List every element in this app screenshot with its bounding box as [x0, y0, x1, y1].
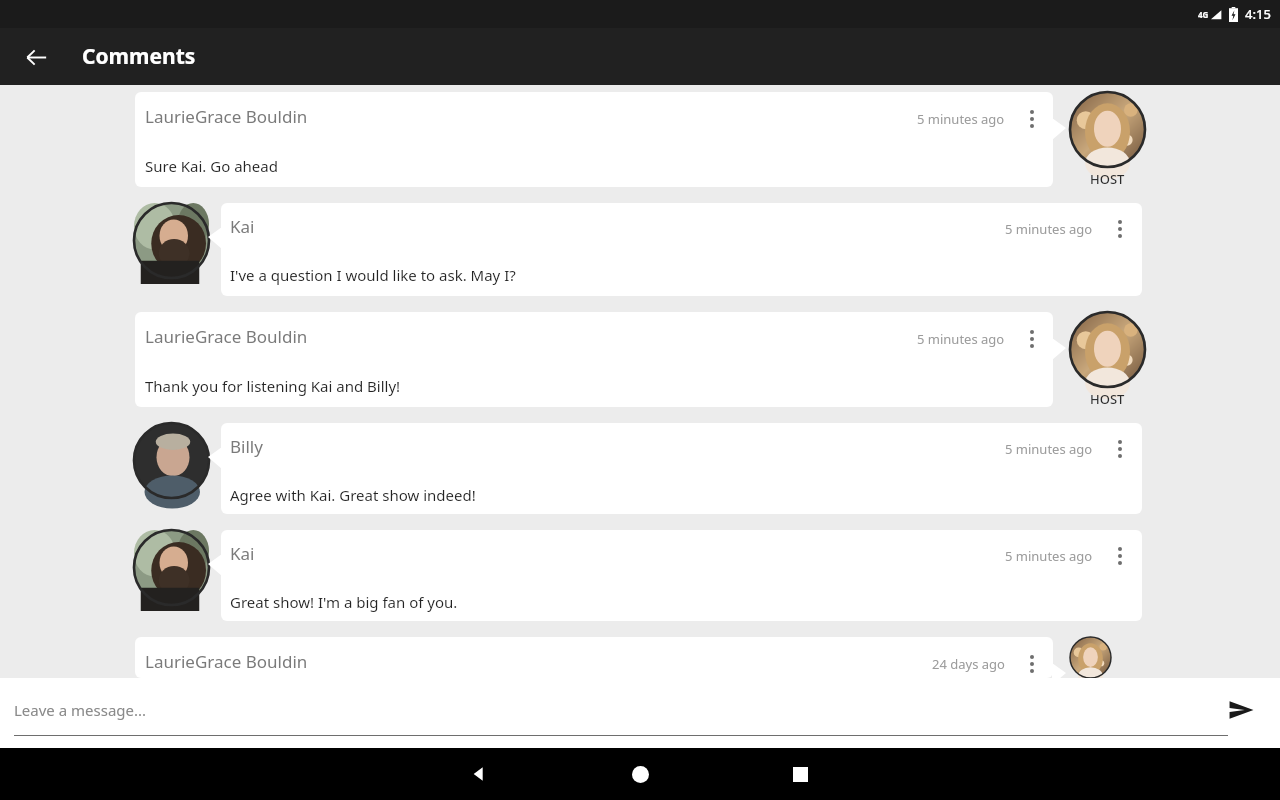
staticText: I've a question I would like to ask. May… [230, 265, 516, 285]
button[interactable]: LaurieGrace Bouldin [135, 92, 1053, 187]
staticText: 5 minutes ago [1005, 220, 1093, 238]
staticText: LaurieGrace Bouldin [145, 650, 308, 673]
button[interactable]: More options [1107, 436, 1133, 462]
staticText: LaurieGrace Bouldin [145, 325, 308, 348]
staticText: Billy [230, 435, 263, 458]
staticText: 24 days ago [932, 655, 1005, 673]
button[interactable]: LaurieGrace Bouldin [135, 312, 1053, 407]
staticText: Sure Kai. Go ahead [145, 156, 278, 176]
button[interactable]: Back [446, 748, 510, 800]
staticText: Comments [82, 42, 196, 71]
button[interactable]: More options [1019, 326, 1045, 352]
button[interactable]: Kai [221, 530, 1142, 621]
button[interactable]: Home [608, 748, 672, 800]
button[interactable]: More options [1107, 543, 1133, 569]
button[interactable]: More options [1019, 106, 1045, 132]
button[interactable]: Kai [221, 203, 1142, 296]
staticText: 4G [1198, 9, 1209, 20]
staticText: 5 minutes ago [1005, 547, 1093, 565]
staticText: LaurieGrace Bouldin [145, 105, 308, 128]
staticText: HOST [1090, 170, 1125, 187]
staticText: 5 minutes ago [917, 110, 1005, 128]
staticText: Thank you for listening Kai and Billy! [145, 376, 401, 396]
button[interactable]: More options [1019, 651, 1045, 677]
button[interactable]: More options [1107, 216, 1133, 242]
staticText: Great show! I'm a big fan of you. [230, 592, 458, 612]
staticText: 4:15 [1245, 5, 1271, 23]
staticText: Agree with Kai. Great show indeed! [230, 485, 476, 505]
staticText: Kai [230, 215, 255, 238]
button[interactable]: Billy [221, 423, 1142, 514]
staticText: 5 minutes ago [917, 330, 1005, 348]
button[interactable]: Send [1220, 689, 1262, 731]
staticText: Kai [230, 542, 255, 565]
button[interactable]: Back [14, 35, 58, 79]
staticText: 5 minutes ago [1005, 440, 1093, 458]
button[interactable]: LaurieGrace Bouldin [135, 637, 1053, 678]
button[interactable]: Recent apps [768, 748, 832, 800]
staticText: HOST [1090, 390, 1125, 407]
staticText: Leave a message... [14, 700, 147, 720]
